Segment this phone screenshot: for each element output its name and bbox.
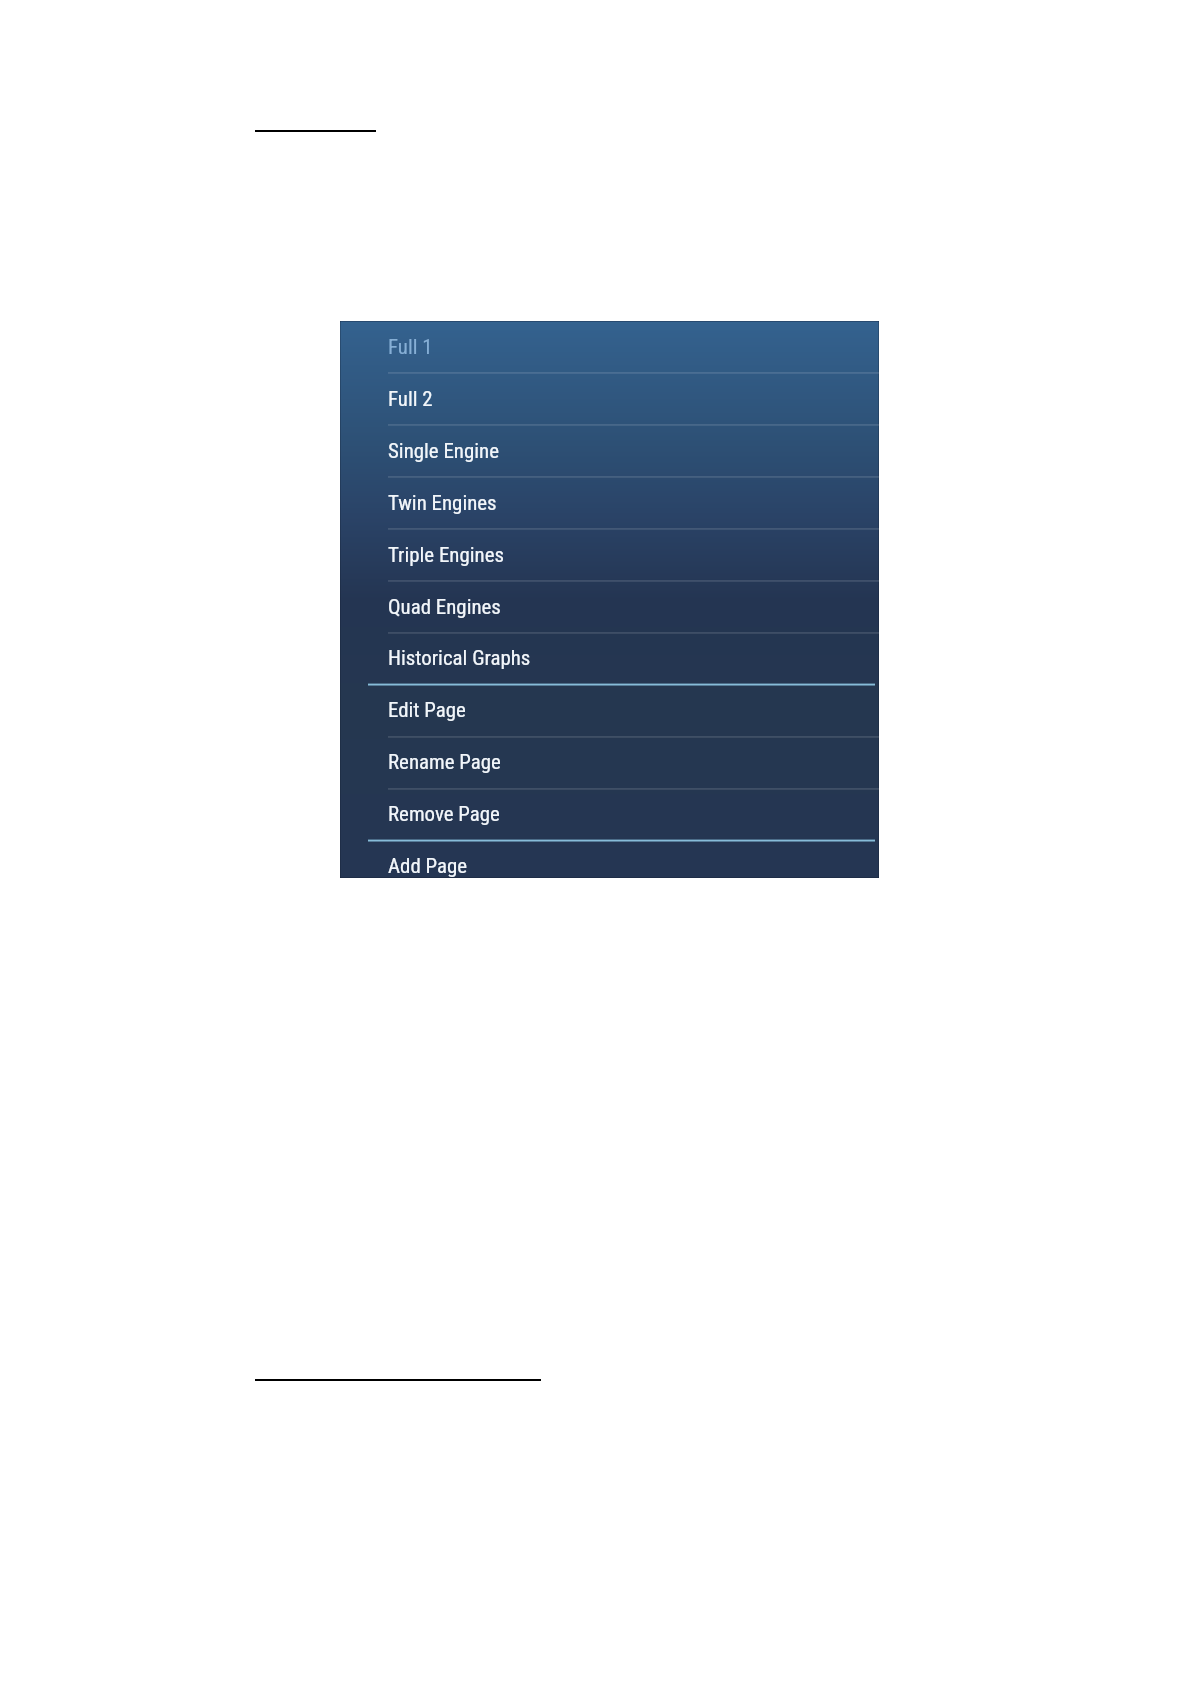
button[interactable]: Add Page (340, 840, 879, 878)
staticText: Add Page (388, 854, 468, 878)
button[interactable]: Full 2 (340, 373, 879, 425)
staticText: Full 2 (388, 387, 433, 411)
button[interactable]: Twin Engines (340, 477, 879, 529)
button[interactable]: Full 1 (340, 321, 879, 373)
button[interactable]: Historical Graphs (340, 632, 879, 684)
staticText: Historical Graphs (388, 646, 531, 670)
button[interactable]: Rename Page (340, 736, 879, 788)
staticText: Rename Page (388, 750, 501, 774)
staticText: Twin Engines (388, 491, 497, 515)
staticText: Full 1 (388, 335, 433, 359)
staticText: Single Engine (388, 439, 499, 463)
staticText: Triple Engines (388, 543, 504, 567)
staticText: Quad Engines (388, 595, 501, 619)
button[interactable]: Single Engine (340, 425, 879, 477)
button[interactable]: Edit Page (340, 684, 879, 736)
staticText: Edit Page (388, 698, 466, 722)
other: Page selector menu (340, 321, 879, 878)
button[interactable]: Quad Engines (340, 581, 879, 633)
button[interactable]: Remove Page (340, 788, 879, 840)
staticText: Remove Page (388, 802, 500, 826)
button[interactable]: Triple Engines (340, 529, 879, 581)
